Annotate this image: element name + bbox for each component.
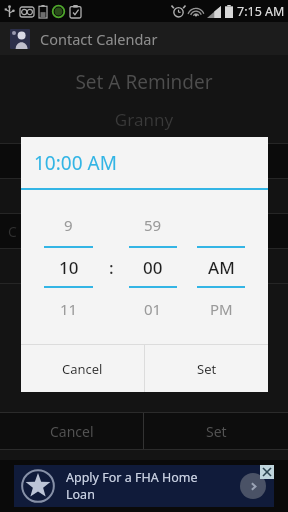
button[interactable]: 01 [122, 294, 184, 324]
staticText: 7:15 AM [237, 3, 285, 20]
staticText: 10:00 AM [34, 150, 117, 176]
button[interactable]: PM [190, 294, 252, 324]
button[interactable]: AM [190, 248, 252, 286]
button[interactable]: Cancel [21, 345, 144, 392]
button[interactable]: 59 [122, 210, 184, 240]
button[interactable]: 11 [37, 294, 100, 324]
button[interactable]: 00 [122, 248, 184, 286]
button[interactable]: Set [145, 345, 268, 392]
button[interactable]: Cancel [0, 413, 143, 449]
staticText: Apply For a FHA Home [66, 469, 198, 486]
button[interactable]: Set [144, 413, 288, 449]
button[interactable]: Apply For a FHA Home [14, 465, 274, 507]
staticText: 59 [144, 215, 162, 235]
staticText: C [8, 222, 17, 241]
staticText: Cancel [62, 360, 103, 378]
staticText: : [109, 256, 114, 279]
staticText: Set [206, 422, 227, 441]
staticText: 01 [144, 299, 162, 319]
button[interactable]: 10 [37, 248, 100, 286]
other: Open ad [240, 473, 266, 499]
staticText: Contact Calendar [40, 29, 158, 49]
staticText: Loan [66, 486, 95, 503]
staticText: AM [208, 256, 235, 279]
staticText: 00 [143, 256, 163, 279]
staticText: Set [197, 360, 217, 378]
staticText: PM [210, 299, 233, 319]
staticText: Granny [0, 108, 288, 131]
staticText: Cancel [50, 422, 94, 441]
button[interactable]: Close ad [260, 465, 274, 479]
button[interactable]: 9 [37, 210, 100, 240]
staticText: 9 [64, 215, 73, 235]
staticText: 11 [60, 299, 78, 319]
staticText: Set A Reminder [0, 69, 288, 95]
staticText: 10 [59, 256, 79, 279]
